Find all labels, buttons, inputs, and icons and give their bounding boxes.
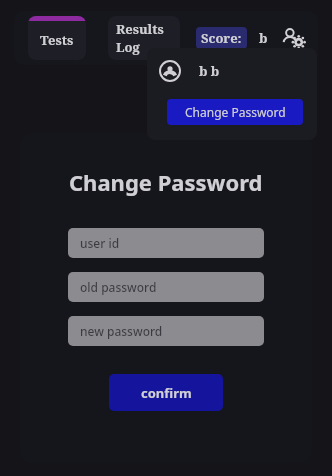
staticText: user id [80, 235, 120, 251]
staticText: b b [199, 62, 220, 80]
button[interactable]: Change Password [167, 99, 303, 125]
button[interactable]: Tests [28, 16, 86, 60]
staticText: Tests [40, 31, 74, 49]
button[interactable]: user id [68, 228, 264, 258]
staticText: new password [80, 323, 163, 339]
button[interactable]: Results [108, 16, 180, 60]
staticText: Change Password [185, 104, 286, 120]
staticText: confirm [141, 384, 192, 402]
button[interactable]: Score: [196, 27, 247, 49]
staticText: Log [116, 38, 140, 56]
staticText: Change Password [69, 167, 263, 197]
staticText: old password [80, 279, 157, 295]
staticText: Score: [201, 29, 242, 47]
button[interactable]: confirm [109, 374, 223, 411]
button[interactable]: b b [159, 60, 220, 82]
button[interactable]: new password [68, 316, 264, 346]
staticText: Results [116, 20, 164, 38]
staticText: b [259, 29, 268, 47]
button[interactable]: old password [68, 272, 264, 302]
button[interactable]: Manage account [280, 25, 306, 51]
